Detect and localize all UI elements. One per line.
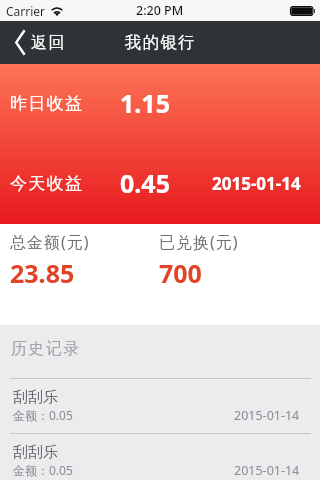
staticText: 1.15 xyxy=(120,86,170,120)
staticText: 2015-01-14 xyxy=(234,462,300,479)
staticText: 已兑换(元) xyxy=(159,231,239,253)
staticText: 2015-01-14 xyxy=(234,407,300,424)
staticText: 23.85 xyxy=(10,256,75,290)
staticText: 刮刮乐 xyxy=(13,388,58,407)
button[interactable]: 刮刮乐 xyxy=(0,378,320,433)
staticText: 金额：0.05 xyxy=(13,462,73,478)
staticText: Carrier xyxy=(6,3,46,19)
staticText: 历史记录 xyxy=(10,339,80,359)
staticText: 我的银行 xyxy=(125,32,196,53)
staticText: 0.45 xyxy=(120,166,170,200)
staticText: 昨日收益 xyxy=(10,93,84,114)
button[interactable]: 刮刮乐 xyxy=(0,433,320,480)
staticText: 700 xyxy=(159,256,202,290)
staticText: 返回 xyxy=(31,33,66,53)
staticText: 金额：0.05 xyxy=(13,407,73,423)
button[interactable]: 返回 Back xyxy=(0,25,78,60)
staticText: 2015-01-14 xyxy=(212,172,301,195)
staticText: 今天收益 xyxy=(10,173,84,194)
staticText: 2:20 PM xyxy=(136,2,184,19)
staticText: 刮刮乐 xyxy=(13,443,58,462)
staticText: 总金额(元) xyxy=(10,231,90,253)
